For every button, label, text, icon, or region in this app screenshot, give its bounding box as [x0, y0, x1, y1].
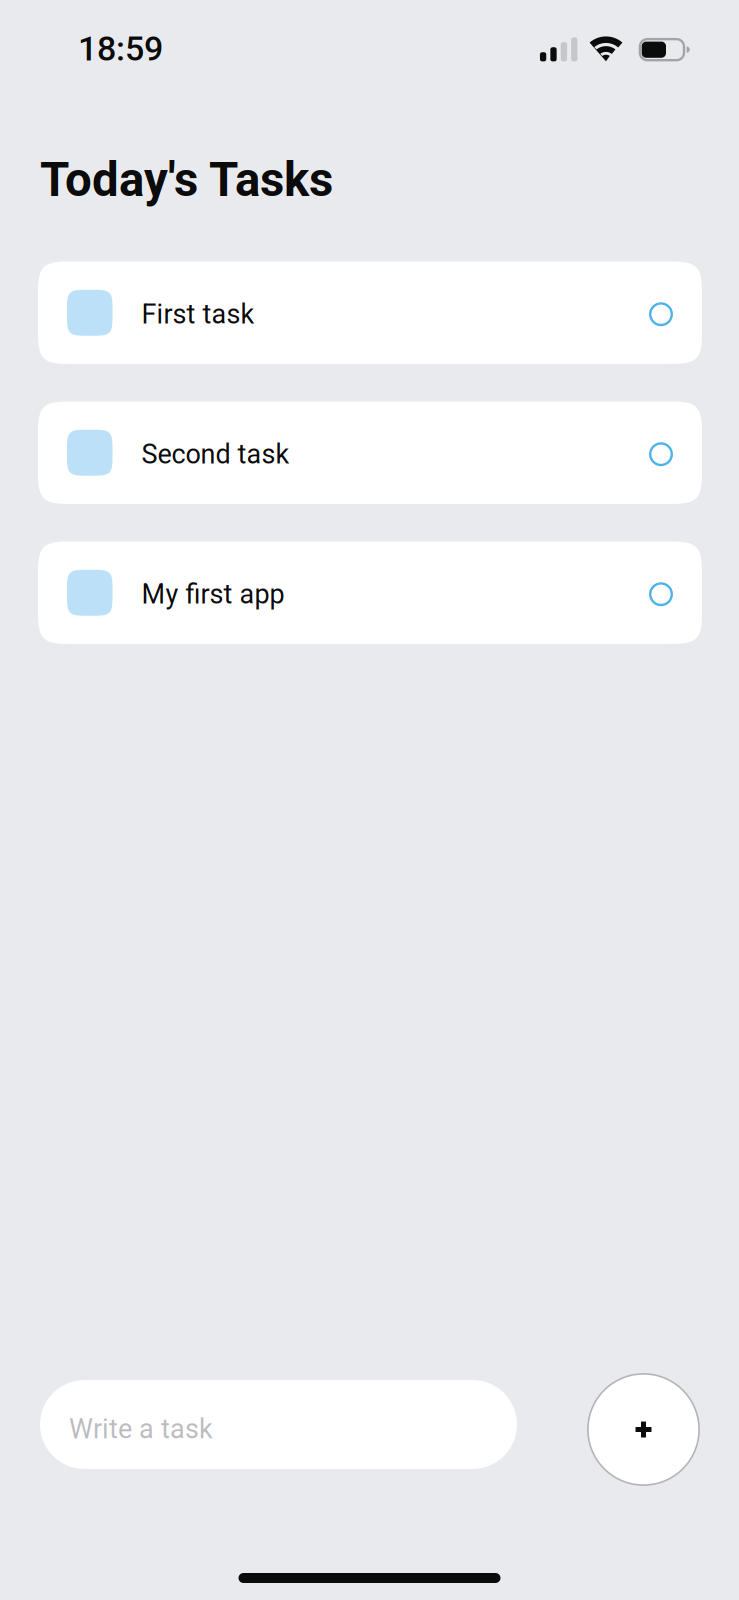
- button[interactable]: Second task: [38, 401, 702, 504]
- staticText: Second task: [141, 438, 289, 470]
- staticText: First task: [141, 298, 254, 330]
- staticText: Write a task: [69, 1413, 213, 1445]
- button[interactable]: Mark First task complete: [649, 301, 673, 325]
- button[interactable]: My first app: [38, 541, 702, 644]
- button[interactable]: Add task: [587, 1373, 700, 1486]
- button[interactable]: Mark Second task complete: [649, 441, 673, 465]
- staticText: My first app: [141, 578, 284, 610]
- button[interactable]: Write a task: [40, 1373, 517, 1486]
- staticText: Today's Tasks: [40, 152, 333, 207]
- button[interactable]: Mark My first app complete: [649, 581, 673, 605]
- button[interactable]: First task: [38, 261, 702, 364]
- staticText: 18:59: [78, 29, 163, 69]
